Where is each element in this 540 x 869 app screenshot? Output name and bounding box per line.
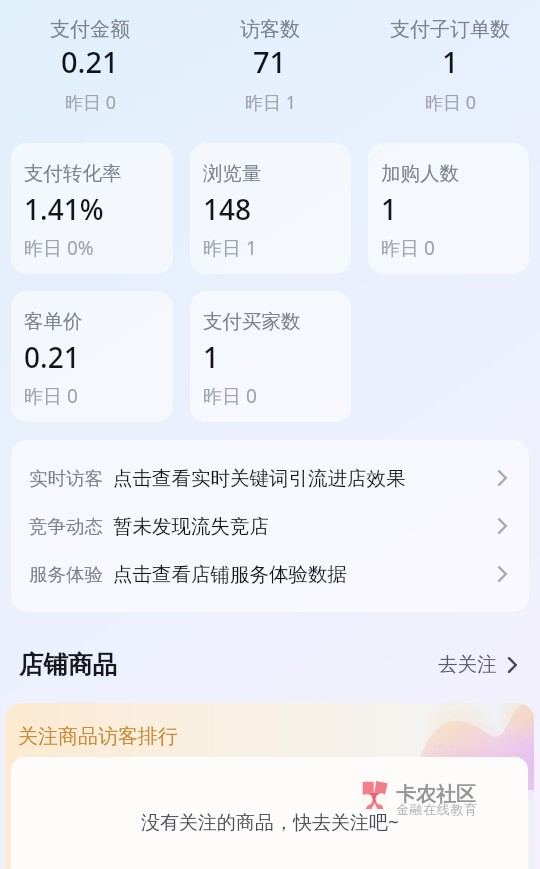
staticText: 去关注 (438, 652, 497, 677)
button[interactable]: 竞争动态 (11, 502, 529, 550)
staticText: 服务体验 (29, 563, 103, 586)
staticText: 71 (253, 42, 287, 81)
staticText: 昨日 0 (65, 90, 116, 115)
staticText: 昨日 0 (425, 90, 476, 115)
button[interactable]: 支付转化率 (11, 143, 173, 274)
staticText: 卡农社区 (396, 782, 476, 807)
button[interactable]: 加购人数 (368, 143, 529, 274)
staticText: 支付金额 (50, 17, 130, 42)
staticText: 点击查看店铺服务体验数据 (113, 562, 347, 587)
staticText: 昨日 0 (381, 235, 435, 258)
staticText: 暂未发现流失竞店 (113, 514, 269, 539)
staticText: 没有关注的商品，快去关注吧~ (141, 809, 399, 835)
staticText: 昨日 0% (24, 235, 94, 258)
staticText: 0.21 (61, 42, 119, 81)
button[interactable]: 客单价 (11, 291, 173, 422)
staticText: 1 (381, 190, 398, 228)
staticText: 访客数 (240, 17, 300, 42)
button[interactable]: 服务体验 (11, 550, 529, 598)
staticText: 0.21 (24, 338, 80, 376)
staticText: 实时访客 (29, 467, 103, 490)
staticText: 昨日 1 (245, 90, 296, 115)
staticText: 竞争动态 (29, 515, 103, 538)
staticText: 昨日 1 (203, 235, 257, 258)
staticText: 金融在线教育 (396, 801, 478, 817)
staticText: 点击查看实时关键词引流进店效果 (113, 466, 406, 491)
button[interactable]: 去关注 (432, 648, 529, 681)
staticText: 148 (203, 190, 252, 228)
staticText: 支付买家数 (203, 309, 301, 334)
staticText: 加购人数 (381, 161, 459, 186)
staticText: 昨日 0 (24, 383, 78, 406)
staticText: 浏览量 (203, 161, 262, 186)
staticText: 1 (203, 338, 220, 376)
button[interactable]: 访客数 (180, 17, 360, 115)
button[interactable]: 支付金额 (0, 17, 180, 115)
staticText: 1 (442, 42, 459, 81)
staticText: 支付转化率 (24, 161, 122, 186)
staticText: 1.41% (24, 190, 104, 228)
staticText: 昨日 0 (203, 383, 257, 406)
staticText: 支付子订单数 (390, 17, 510, 42)
button[interactable]: 实时访客 (11, 454, 529, 502)
staticText: 客单价 (24, 309, 83, 334)
staticText: 店铺商品 (19, 649, 117, 680)
button[interactable]: 浏览量 (190, 143, 351, 274)
button[interactable]: 支付子订单数 (360, 17, 540, 115)
button[interactable]: 支付买家数 (190, 291, 351, 422)
staticText: 关注商品访客排行 (18, 724, 178, 749)
